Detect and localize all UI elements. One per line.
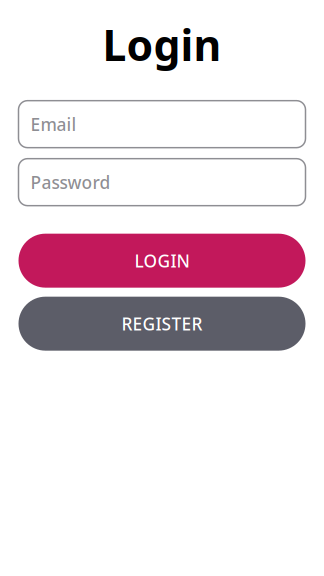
button[interactable]: Password: [18, 159, 305, 206]
button[interactable]: REGISTER: [18, 297, 305, 351]
button[interactable]: Email: [18, 101, 305, 148]
staticText: LOGIN: [134, 249, 189, 272]
staticText: Login: [102, 16, 221, 73]
staticText: Email: [30, 113, 76, 136]
button[interactable]: LOGIN: [18, 234, 305, 288]
staticText: Password: [30, 171, 110, 194]
staticText: REGISTER: [121, 312, 202, 335]
